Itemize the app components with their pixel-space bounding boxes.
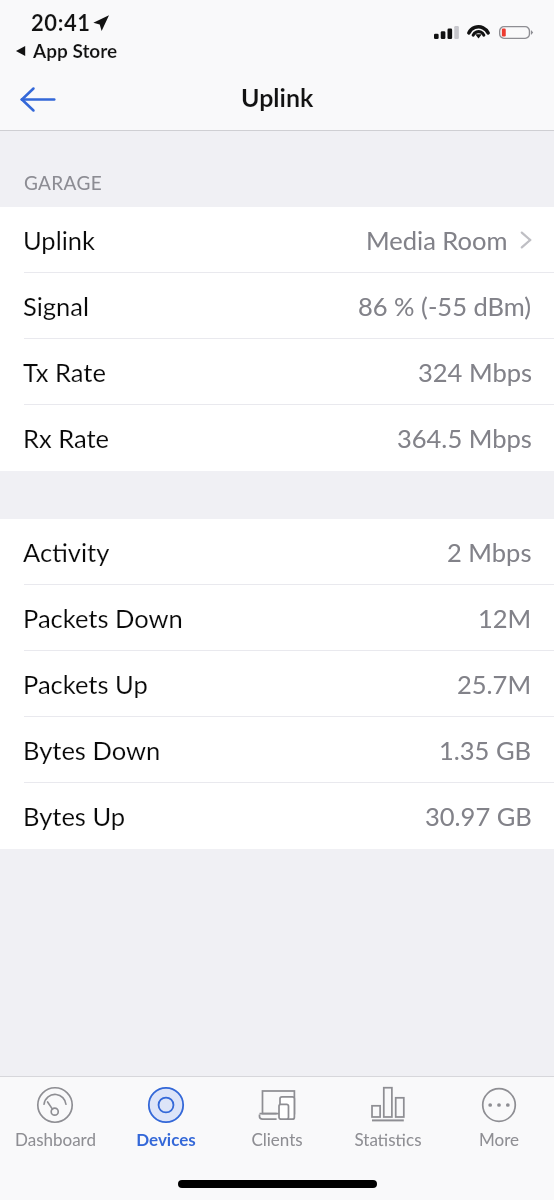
staticText: Uplink	[23, 225, 95, 256]
button[interactable]: Rx Rate	[0, 405, 554, 471]
staticText: 324 Mbps	[418, 357, 532, 388]
button[interactable]: More	[443, 1077, 554, 1166]
button[interactable]: Devices	[110, 1077, 221, 1166]
staticText: Clients	[251, 1129, 303, 1149]
staticText: Packets Up	[23, 669, 148, 700]
staticText: Rx Rate	[23, 423, 110, 454]
staticText: App Store	[33, 39, 118, 62]
button[interactable]: Uplink	[0, 207, 554, 273]
staticText: 12M	[478, 603, 532, 634]
button[interactable]: Bytes Up	[0, 783, 554, 849]
staticText: Packets Down	[23, 603, 183, 634]
staticText: Uplink	[241, 82, 314, 112]
button[interactable]: Statistics	[332, 1077, 443, 1166]
button[interactable]: Activity	[0, 519, 554, 585]
staticText: 20:41	[31, 9, 91, 35]
button[interactable]: Clients	[221, 1077, 332, 1166]
staticText: 1.35 GB	[439, 735, 532, 766]
staticText: Bytes Down	[23, 735, 161, 766]
staticText: 364.5 Mbps	[397, 423, 532, 454]
staticText: Bytes Up	[23, 801, 126, 832]
staticText: 25.7M	[457, 669, 532, 700]
staticText: Dashboard	[15, 1129, 96, 1149]
button[interactable]: Packets Up	[0, 651, 554, 717]
staticText: Signal	[23, 291, 90, 322]
button[interactable]: Tx Rate	[0, 339, 554, 405]
staticText: Tx Rate	[23, 357, 106, 388]
staticText: More	[479, 1129, 519, 1149]
button[interactable]: Packets Down	[0, 585, 554, 651]
button[interactable]: Signal	[0, 273, 554, 339]
staticText: Media Room	[366, 225, 508, 256]
staticText: GARAGE	[24, 171, 102, 194]
staticText: Statistics	[354, 1129, 422, 1149]
staticText: 2 Mbps	[447, 537, 532, 568]
button[interactable]: Bytes Down	[0, 717, 554, 783]
staticText: 30.97 GB	[425, 801, 532, 832]
staticText: 86 % (-55 dBm)	[358, 291, 532, 322]
button[interactable]: Dashboard	[0, 1077, 110, 1166]
staticText: Devices	[136, 1129, 196, 1149]
button[interactable]: Back	[0, 68, 78, 130]
staticText: Activity	[23, 537, 110, 568]
